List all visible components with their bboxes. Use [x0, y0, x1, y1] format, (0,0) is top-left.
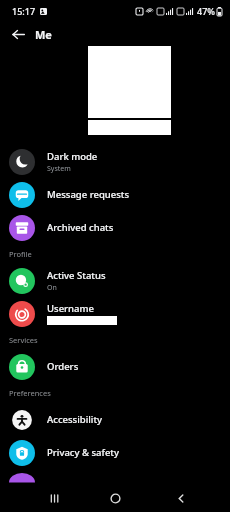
staticText: Dark mode: [47, 150, 98, 163]
button[interactable]: Back: [6, 22, 30, 46]
button[interactable]: [0, 473, 230, 479]
button[interactable]: Back: [166, 484, 196, 512]
button[interactable]: Accessibility: [0, 403, 230, 436]
button[interactable]: Active Status: [0, 264, 230, 297]
button[interactable]: Username: [0, 297, 230, 330]
staticText: Username: [47, 302, 94, 315]
staticText: On: [47, 283, 57, 293]
staticText: System: [47, 164, 71, 174]
staticText: Archived chats: [47, 221, 114, 234]
button[interactable]: Message requests: [0, 178, 230, 211]
staticText: Message requests: [47, 188, 130, 201]
staticText: Preferences: [9, 388, 51, 398]
button[interactable]: Privacy & safety: [0, 436, 230, 469]
staticText: 15:17: [12, 5, 36, 17]
staticText: Orders: [47, 360, 79, 373]
button[interactable]: Home: [100, 484, 130, 512]
button[interactable]: Orders: [0, 350, 230, 383]
button[interactable]: Archived chats: [0, 211, 230, 244]
button[interactable]: Dark mode: [0, 145, 230, 178]
staticText: Accessibility: [47, 413, 103, 426]
staticText: Services: [9, 335, 38, 345]
staticText: Privacy & safety: [47, 446, 119, 459]
staticText: 47%: [197, 5, 215, 17]
staticText: Me: [35, 27, 52, 42]
button[interactable]: Recents: [40, 484, 70, 512]
staticText: Active Status: [47, 269, 106, 282]
staticText: Profile: [9, 249, 32, 259]
